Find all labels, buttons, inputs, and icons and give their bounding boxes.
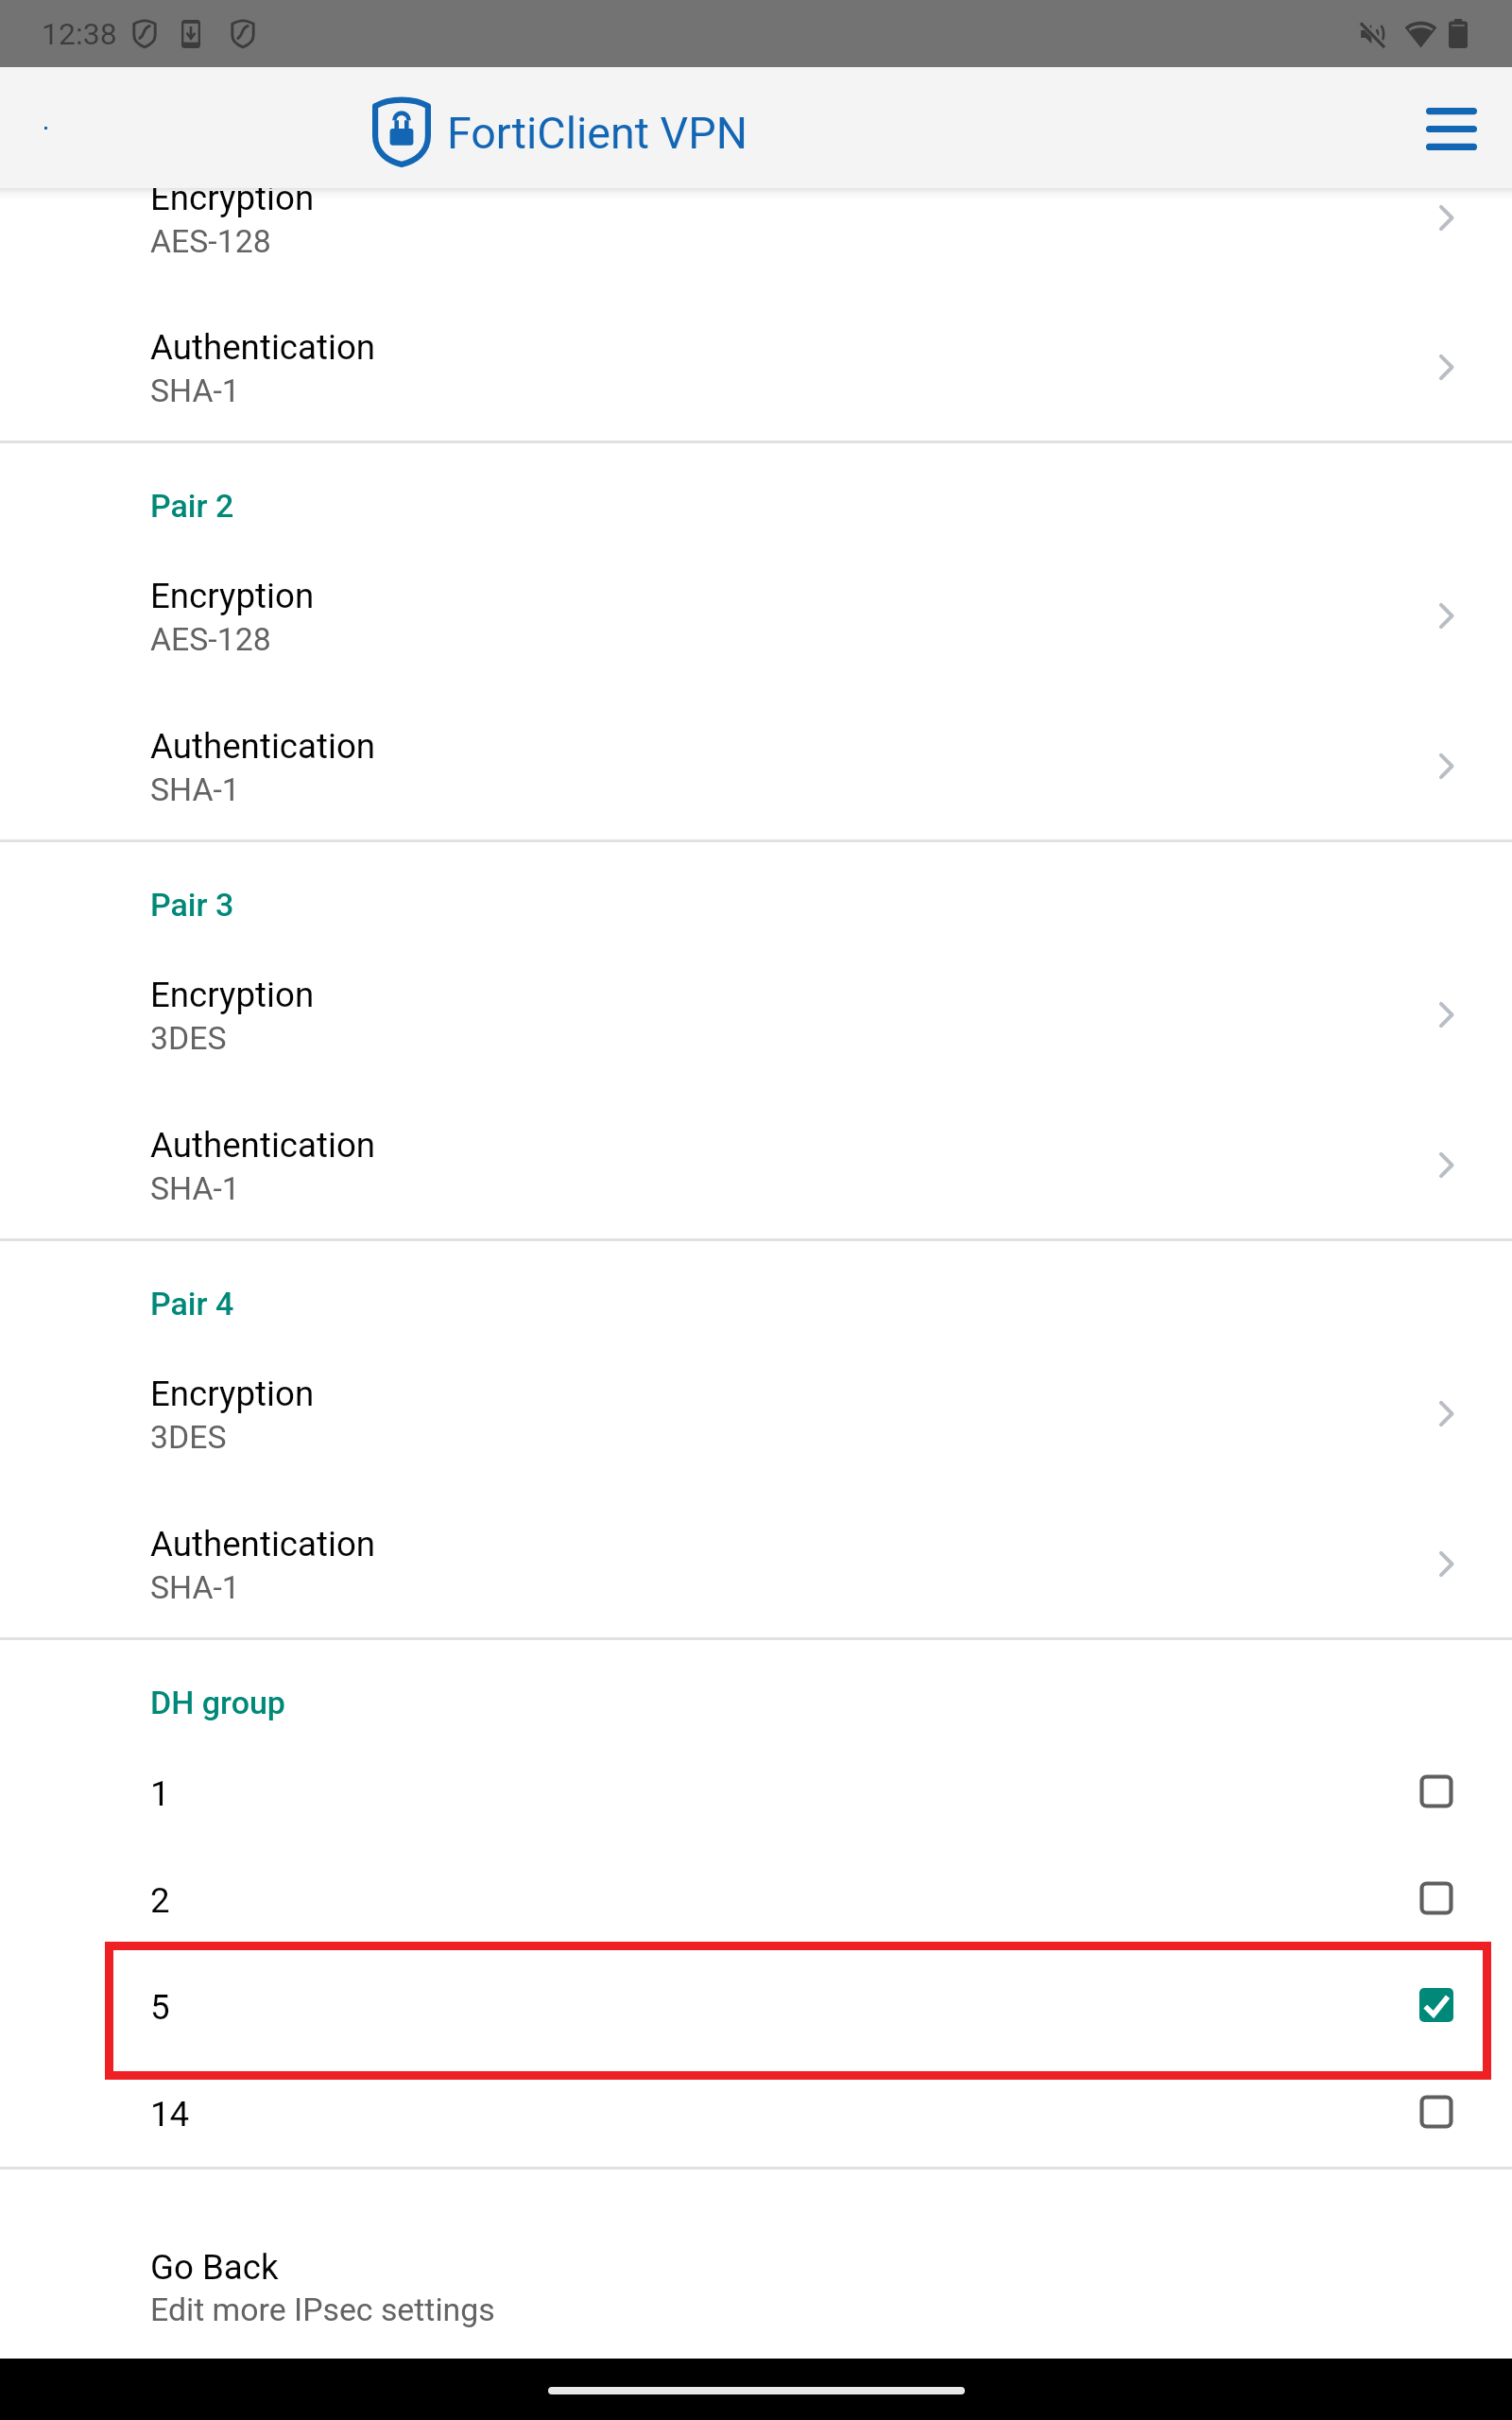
button[interactable]: Go Back — [0, 2247, 1512, 2359]
staticText: Encryption — [150, 1374, 315, 1414]
button[interactable]: Encryption — [0, 576, 1512, 680]
button[interactable]: Authentication — [0, 1125, 1512, 1229]
button[interactable]: 1 — [0, 1740, 1512, 1847]
button[interactable]: Authentication — [0, 726, 1512, 830]
staticText: DH group — [150, 1684, 285, 1721]
staticText: Authentication — [150, 1524, 376, 1564]
staticText: 1 — [150, 1773, 1419, 1814]
staticText: Encryption — [150, 975, 315, 1015]
staticText: 5 — [150, 1987, 1419, 2028]
staticText: 3DES — [150, 1419, 227, 1457]
staticText: Authentication — [150, 1125, 376, 1166]
staticText: SHA-1 — [150, 771, 240, 809]
staticText: Pair 3 — [150, 886, 234, 924]
staticText: Go Back — [150, 2247, 279, 2288]
staticText: Pair 4 — [150, 1285, 234, 1322]
staticText: AES-128 — [150, 621, 271, 659]
staticText: 3DES — [150, 1020, 227, 1058]
staticText: AES-128 — [150, 223, 271, 261]
staticText: SHA-1 — [150, 1170, 240, 1208]
staticText: SHA-1 — [150, 1569, 240, 1607]
button[interactable]: Authentication — [0, 1524, 1512, 1628]
button[interactable]: Encryption — [0, 975, 1512, 1079]
staticText: 12:38 — [42, 16, 117, 52]
staticText: Authentication — [150, 327, 376, 368]
staticText: 14 — [150, 2094, 1419, 2135]
staticText: 2 — [150, 1880, 1419, 1921]
staticText: Edit more IPsec settings — [150, 2291, 495, 2329]
button[interactable]: Authentication — [0, 327, 1512, 431]
staticText: SHA-1 — [150, 372, 240, 410]
staticText: FortiClient VPN — [447, 108, 747, 160]
staticText: Encryption — [150, 576, 315, 616]
button[interactable]: Encryption — [0, 1374, 1512, 1478]
staticText: Encryption — [150, 188, 315, 218]
button[interactable]: Menu — [1407, 82, 1498, 173]
button[interactable]: 2 — [0, 1847, 1512, 1954]
staticText: Authentication — [150, 726, 376, 767]
staticText: Pair 2 — [150, 487, 234, 525]
button[interactable]: Encryption — [0, 188, 1512, 282]
button[interactable]: 5 — [0, 1954, 1512, 2061]
button[interactable]: 14 — [0, 2061, 1512, 2168]
